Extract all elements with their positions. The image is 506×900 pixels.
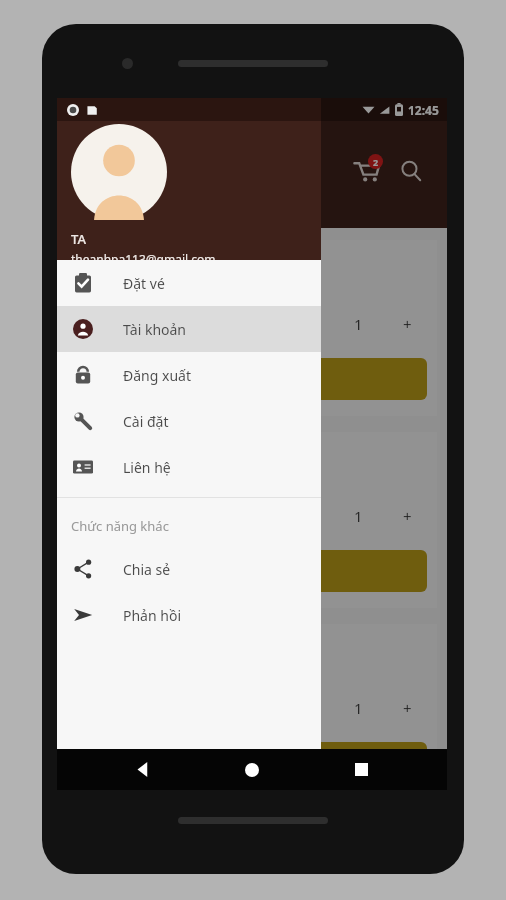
staticText: Đặt vé xyxy=(123,274,165,293)
staticText: 2 xyxy=(373,156,379,168)
button[interactable]: Đặt vé xyxy=(57,260,321,306)
button[interactable]: Recents xyxy=(338,749,384,790)
button[interactable]: Liên hệ xyxy=(57,444,321,490)
staticText: 1 xyxy=(354,698,363,718)
staticText: 1 xyxy=(354,506,363,526)
staticText: Tài khoản xyxy=(123,320,187,339)
button[interactable]: Search xyxy=(389,149,433,193)
button[interactable]: Cart xyxy=(345,149,389,193)
staticText: Chức năng khác xyxy=(71,517,169,535)
staticText: TA xyxy=(71,230,86,248)
staticText: theanhpa113@gmail.com xyxy=(71,251,216,260)
staticText: Phản hồi xyxy=(123,606,182,625)
button[interactable]: Back xyxy=(120,749,166,790)
staticText: Đăng xuất xyxy=(123,366,191,385)
staticText: Theo khuyến mãi xyxy=(73,192,179,210)
staticText: + xyxy=(403,314,412,334)
staticText: + xyxy=(403,698,412,718)
button[interactable]: Chia sẻ xyxy=(57,546,321,592)
button[interactable]: Đăng xuất xyxy=(57,352,321,398)
staticText: 1 xyxy=(354,314,363,334)
button[interactable]: Home xyxy=(229,749,275,790)
button[interactable]: Tài khoản xyxy=(57,306,321,352)
button[interactable]: Phản hồi xyxy=(57,592,321,638)
staticText: Chia sẻ xyxy=(123,560,171,579)
staticText: 12:45 xyxy=(408,102,439,118)
button[interactable] xyxy=(77,742,427,780)
staticText: Cài đặt xyxy=(123,412,169,431)
staticText: Liên hệ xyxy=(123,458,171,477)
button[interactable]: Cài đặt xyxy=(57,398,321,444)
staticText: + xyxy=(403,506,412,526)
button[interactable] xyxy=(77,550,427,592)
button[interactable] xyxy=(77,358,427,400)
